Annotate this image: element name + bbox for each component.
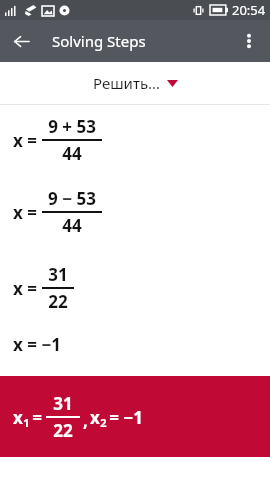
staticText: x [90,406,100,429]
staticText: Решить… [93,73,160,93]
staticText: x = [13,129,37,152]
staticText: x = [13,277,37,300]
staticText: 2 [100,415,107,430]
staticText: 44 [62,214,82,237]
button[interactable]: x [0,376,270,457]
staticText: 44 [62,142,82,165]
button[interactable]: Back [0,20,42,62]
button[interactable]: x = [0,187,270,237]
staticText: 31 [53,392,73,415]
staticText: = −1 [109,406,143,429]
staticText: 22 [53,419,73,442]
staticText: Solving Steps [52,31,146,51]
staticText: x = [13,201,37,224]
button[interactable]: x = −1 [0,333,270,356]
staticText: 9 − 53 [48,187,96,210]
staticText: x = −1 [13,333,61,356]
button[interactable]: x = [0,115,270,165]
staticText: 9 + 53 [48,115,96,138]
button[interactable]: Решить… [85,67,186,99]
staticText: = [32,406,42,429]
button[interactable]: More options [228,20,270,62]
staticText: 20:54 [232,1,266,19]
staticText: 22 [48,290,68,313]
staticText: , [83,409,88,432]
staticText: x [13,406,23,429]
staticText: 1 [23,415,30,430]
staticText: 31 [48,263,68,286]
button[interactable]: x = [0,263,270,313]
